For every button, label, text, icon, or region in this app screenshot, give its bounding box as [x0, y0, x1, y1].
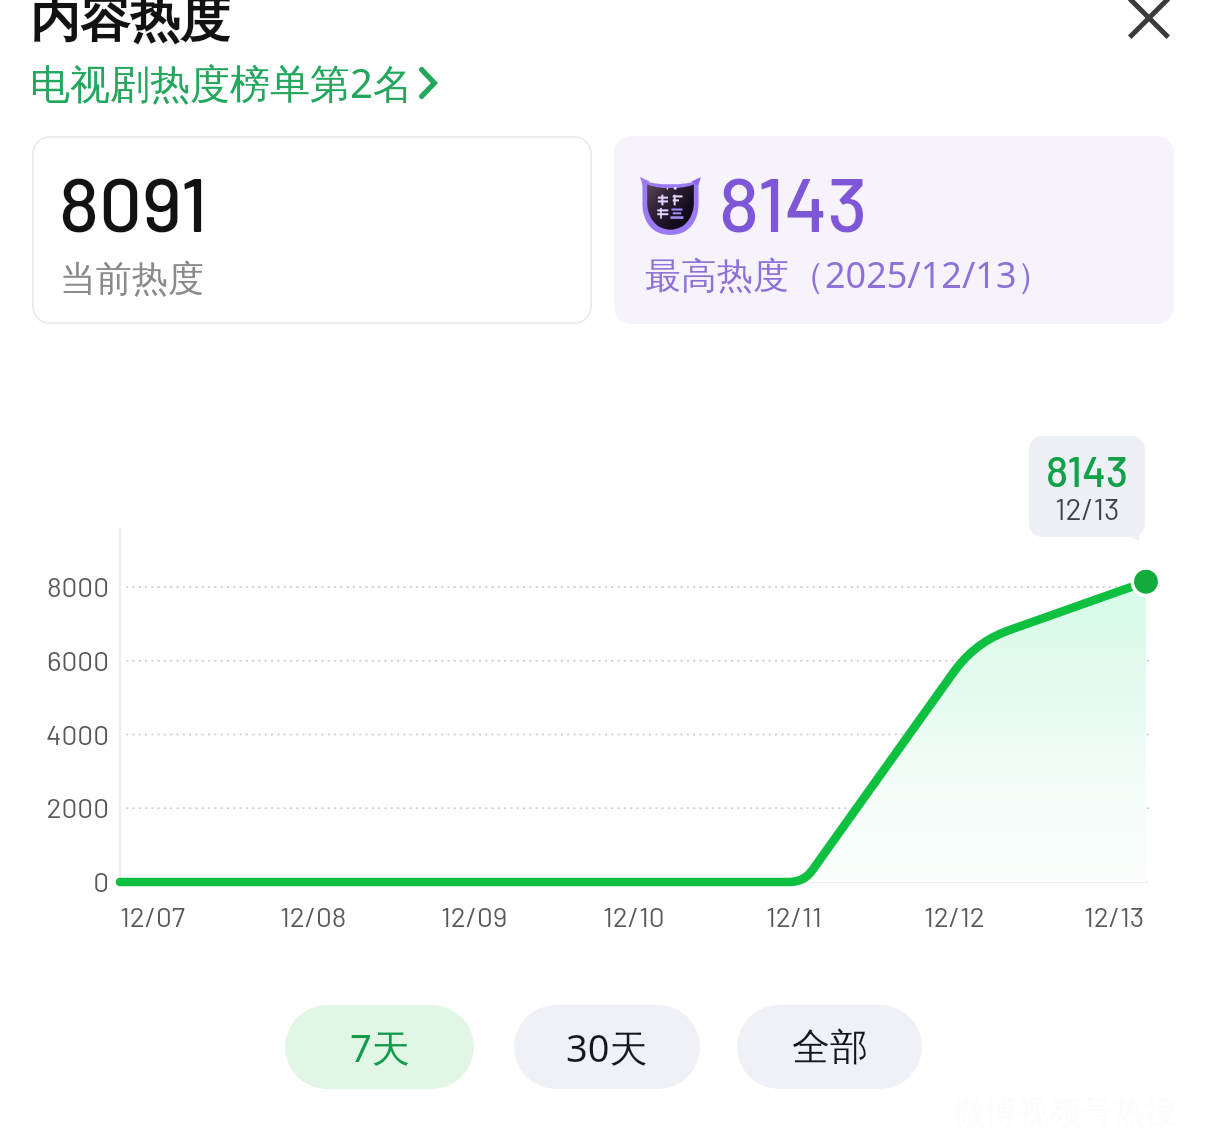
staticText: 12/12 — [924, 899, 985, 933]
staticText: 8091 — [59, 156, 208, 247]
staticText: 2000 — [46, 790, 109, 824]
button[interactable]: 8091 — [32, 136, 592, 324]
staticText: 12/08 — [280, 899, 347, 933]
staticText: 4000 — [46, 717, 109, 751]
staticText: 7天 — [350, 1021, 410, 1073]
staticText: 12/13 — [1084, 899, 1145, 933]
staticText: 12/10 — [603, 899, 665, 933]
staticText: 12/11 — [766, 899, 822, 933]
staticText: 当前热度 — [60, 256, 204, 301]
staticText: 30天 — [566, 1021, 648, 1073]
button[interactable]: 全部 — [737, 1005, 922, 1089]
staticText: 最高热度（2025/12/13） — [645, 250, 1053, 299]
button[interactable]: 7天 — [285, 1005, 474, 1089]
staticText: 8143 — [719, 156, 868, 247]
staticText: 6000 — [47, 643, 109, 677]
button[interactable]: 30天 — [514, 1005, 700, 1089]
button[interactable]: Close — [1121, 0, 1177, 46]
staticText: 8000 — [46, 569, 109, 603]
staticText: 0 — [93, 864, 109, 898]
staticText: 内容热度 — [30, 0, 230, 51]
button[interactable]: 8143 — [614, 136, 1174, 324]
staticText: 12/07 — [120, 899, 186, 933]
staticText: 8143 — [1046, 445, 1128, 495]
button[interactable]: 8143 on 12/13 — [1029, 436, 1145, 537]
staticText: 12/09 — [441, 899, 508, 933]
staticText: 12/13 — [1055, 490, 1120, 526]
staticText: 电视剧热度榜单第2名 — [30, 55, 413, 110]
button[interactable]: 电视剧热度榜单第2名 — [28, 53, 439, 112]
staticText: 全部 — [792, 1023, 868, 1071]
